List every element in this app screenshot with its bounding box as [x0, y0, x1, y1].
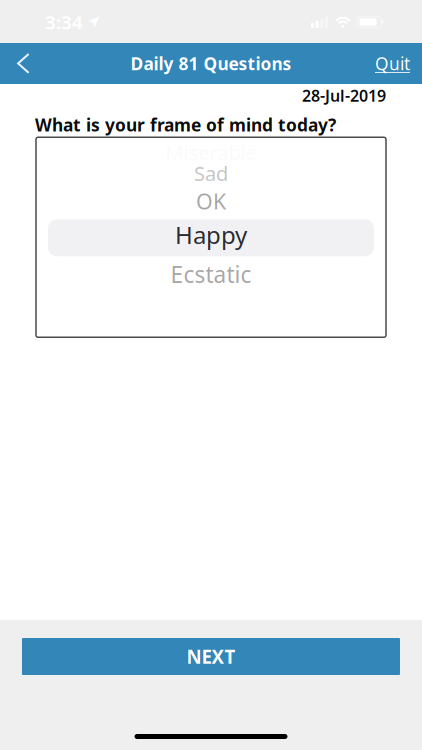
- staticText: Daily 81 Questions: [130, 52, 291, 75]
- button[interactable]: Quit: [375, 43, 422, 84]
- button[interactable]: Back: [0, 43, 49, 84]
- staticText: OK: [196, 187, 226, 215]
- button[interactable]: NEXT: [22, 638, 400, 675]
- staticText: Sad: [194, 160, 228, 187]
- staticText: 3:34: [45, 10, 83, 34]
- staticText: Happy: [175, 219, 247, 251]
- staticText: NEXT: [186, 644, 235, 669]
- staticText: Quit: [375, 52, 410, 75]
- staticText: Ecstatic: [170, 259, 251, 289]
- staticText: What is your frame of mind today?: [35, 113, 336, 136]
- staticText: 28-Jul-2019: [302, 85, 386, 106]
